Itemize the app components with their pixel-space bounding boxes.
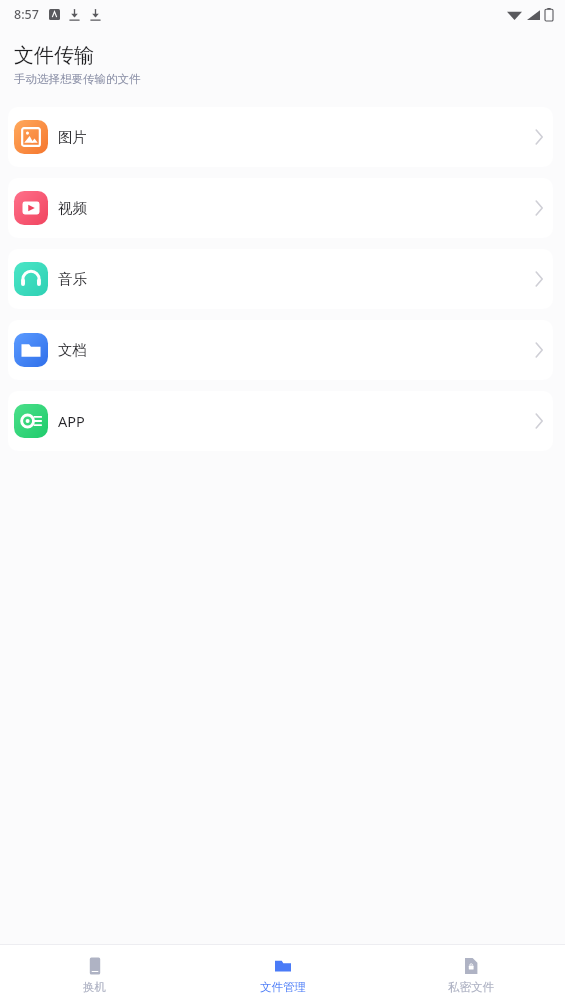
- staticText: 文件传输: [14, 43, 94, 68]
- staticText: 文档: [58, 341, 87, 359]
- staticText: 音乐: [58, 270, 87, 288]
- staticText: 私密文件: [448, 980, 494, 994]
- staticText: 换机: [83, 980, 106, 994]
- button[interactable]: 文档: [8, 320, 553, 380]
- button[interactable]: 换机: [0, 945, 189, 1004]
- button[interactable]: APP: [8, 391, 553, 451]
- staticText: 8:57: [14, 6, 39, 23]
- button[interactable]: 音乐: [8, 249, 553, 309]
- button[interactable]: 视频: [8, 178, 553, 238]
- button[interactable]: 图片: [8, 107, 553, 167]
- staticText: 视频: [58, 199, 87, 217]
- staticText: 手动选择想要传输的文件: [14, 72, 141, 86]
- button[interactable]: 私密文件: [377, 945, 565, 1004]
- staticText: 文件管理: [260, 980, 306, 994]
- staticText: 图片: [58, 128, 87, 146]
- staticText: APP: [58, 411, 85, 431]
- button[interactable]: 文件管理: [189, 945, 377, 1004]
